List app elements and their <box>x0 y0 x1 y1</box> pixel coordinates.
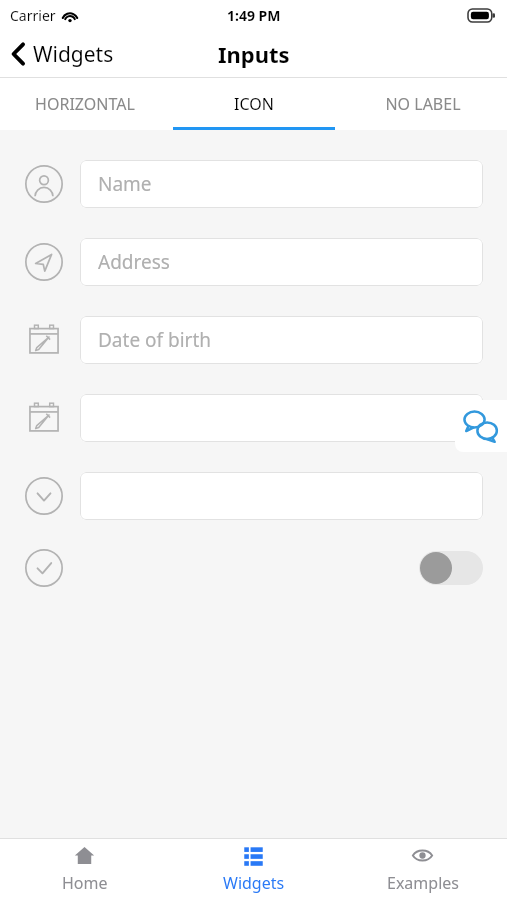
button[interactable]: Address <box>80 238 483 286</box>
button[interactable]: NO LABEL <box>338 78 507 130</box>
staticText: Address <box>98 249 170 275</box>
staticText: Date of birth <box>98 327 212 353</box>
button[interactable] <box>80 394 483 442</box>
staticText: Inputs <box>218 39 290 69</box>
button[interactable]: ICON <box>169 78 338 130</box>
button[interactable] <box>80 472 483 520</box>
button[interactable]: Widgets <box>0 30 126 78</box>
staticText: Name <box>98 171 152 197</box>
button[interactable]: Home <box>0 839 169 900</box>
button[interactable]: Chat <box>455 400 507 452</box>
button[interactable]: Toggle switch <box>419 551 483 585</box>
staticText: Examples <box>387 872 459 894</box>
staticText: HORIZONTAL <box>35 93 135 115</box>
button[interactable]: Name <box>80 160 483 208</box>
button[interactable]: HORIZONTAL <box>0 78 169 130</box>
staticText: ICON <box>234 93 274 115</box>
staticText: NO LABEL <box>385 93 461 115</box>
staticText: Carrier <box>10 6 56 25</box>
staticText: Home <box>62 872 108 894</box>
button[interactable]: Examples <box>338 839 507 900</box>
button[interactable]: Date of birth <box>80 316 483 364</box>
staticText: 1:49 PM <box>227 6 281 25</box>
staticText: Widgets <box>223 872 285 894</box>
button[interactable]: Widgets <box>169 839 338 900</box>
staticText: Widgets <box>33 40 114 69</box>
